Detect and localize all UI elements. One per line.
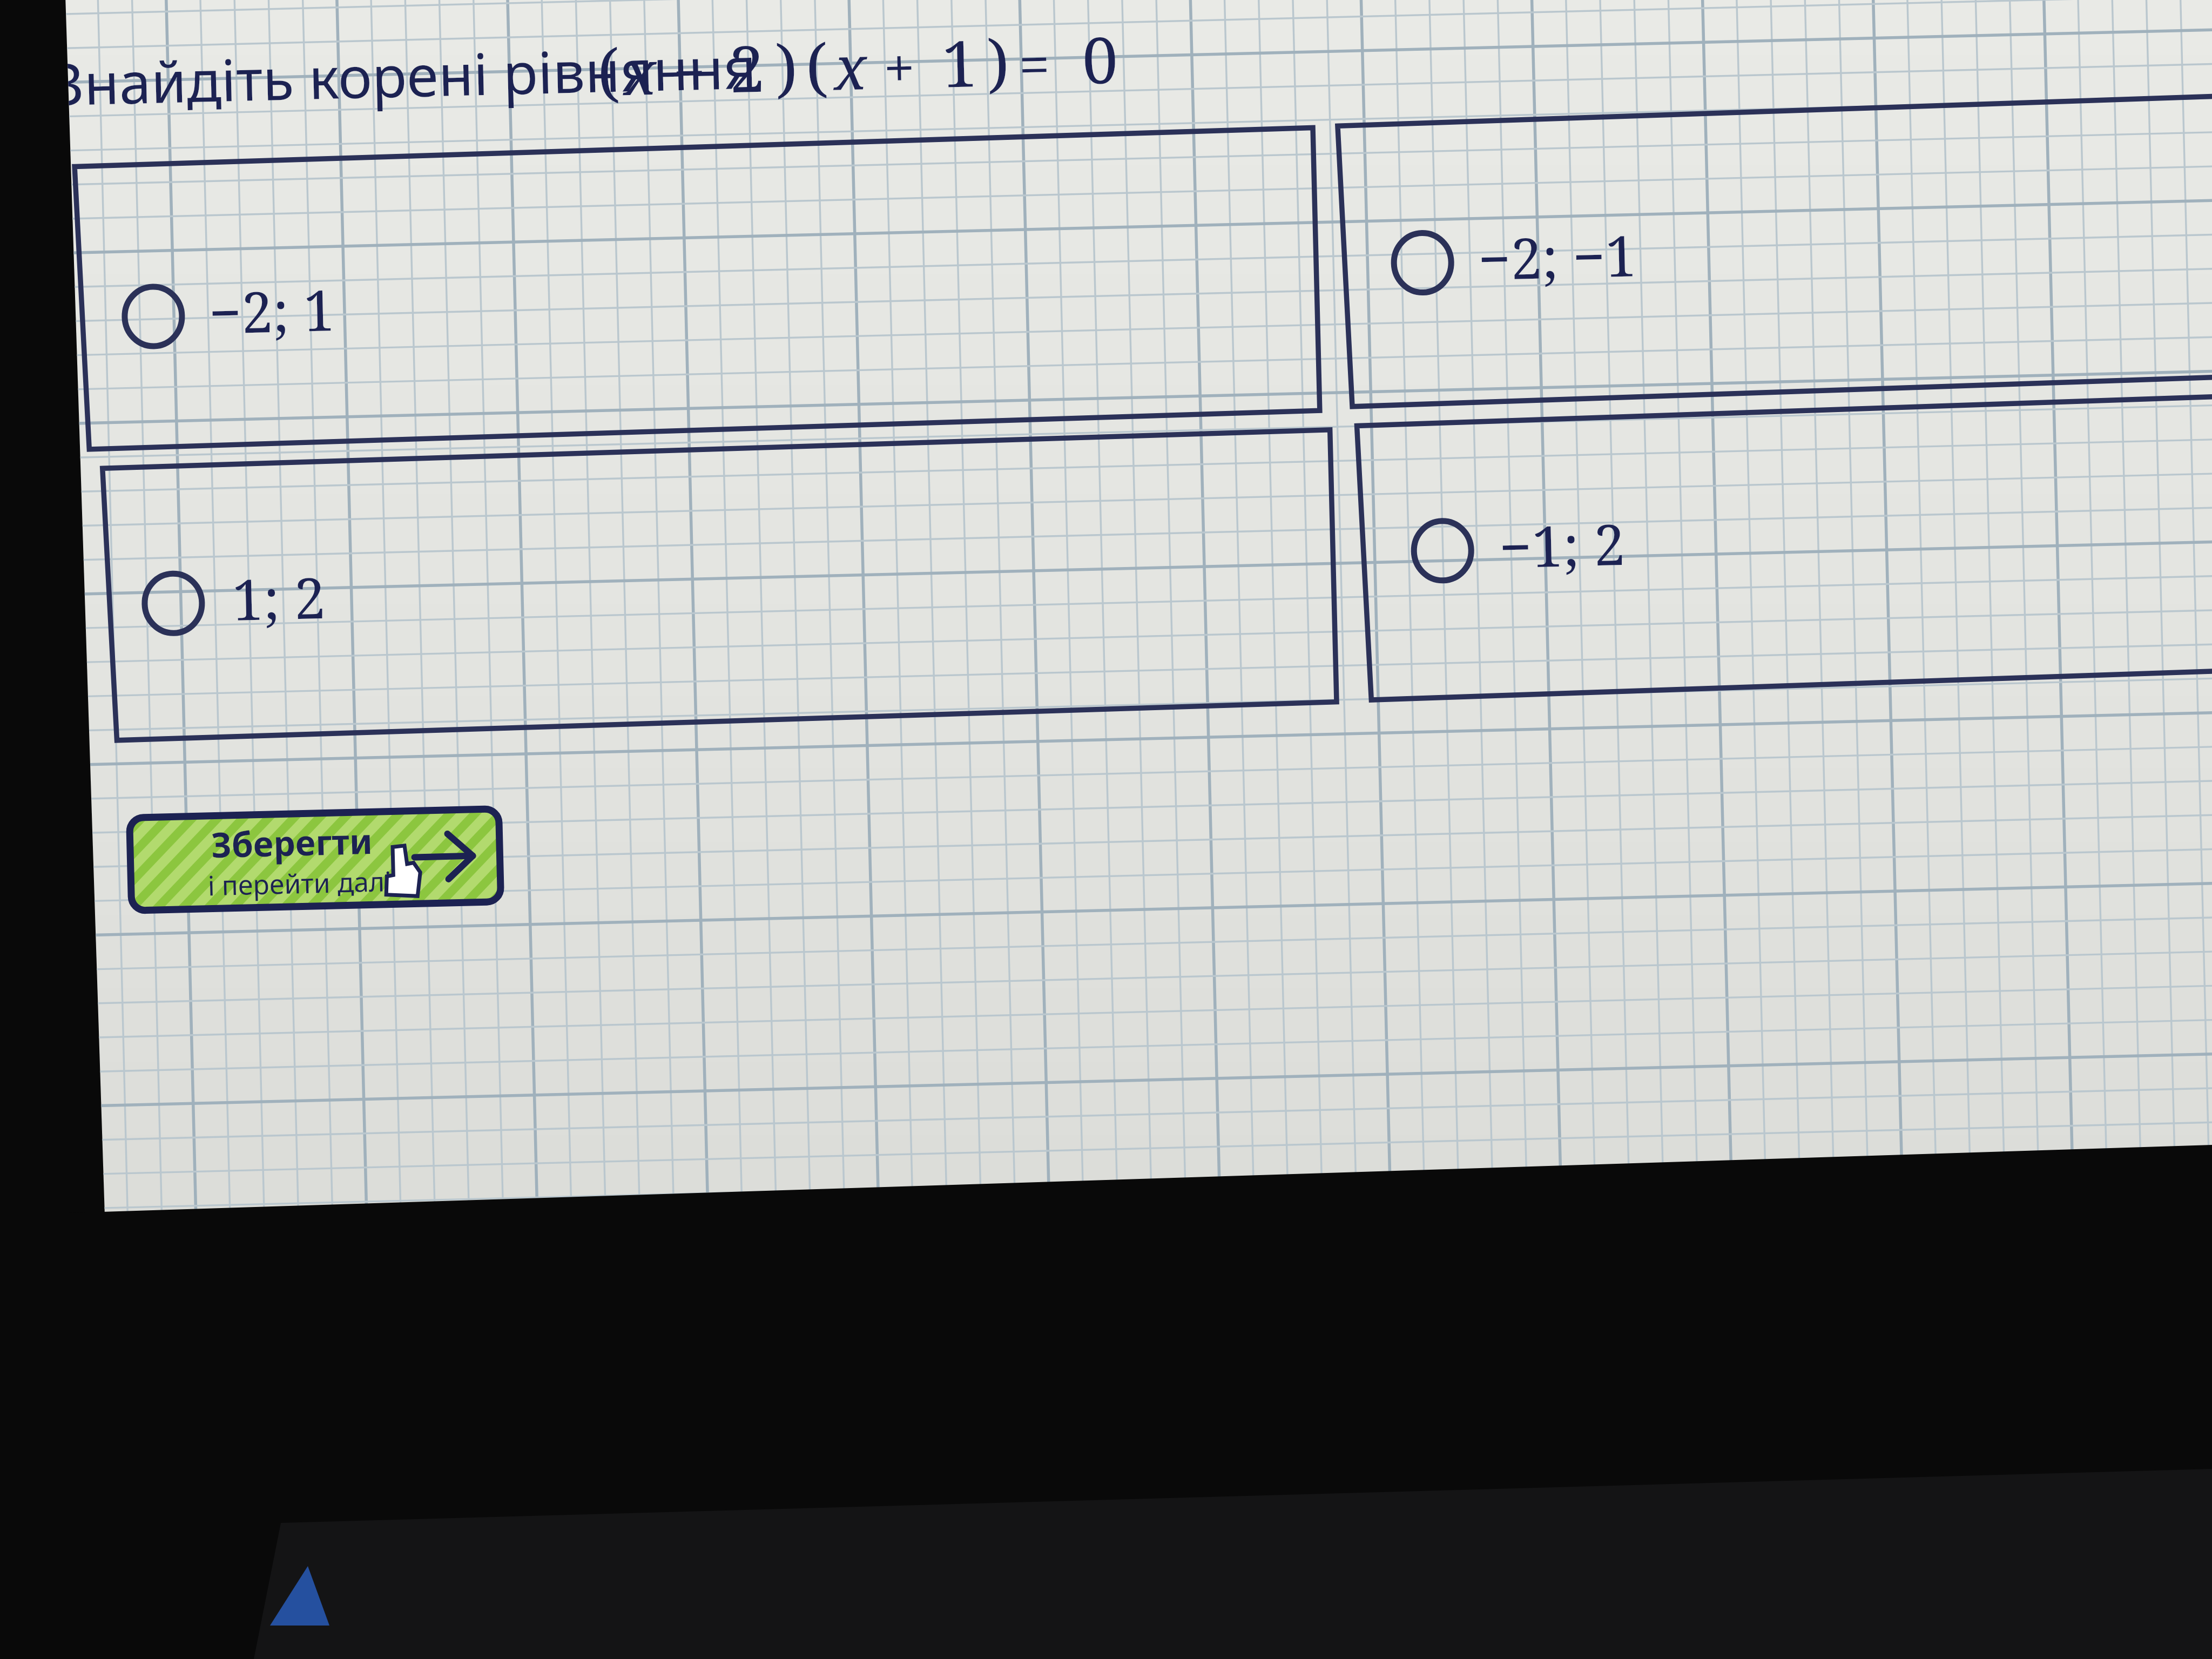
button[interactable]: Answer minus 2; 1 [84,133,1327,415]
button[interactable]: Answer minus 2; minus 1 [1350,123,2201,403]
button[interactable]: Зберегти і перейти далі [124,793,493,886]
button[interactable]: Answer 1; 2 [106,435,1334,707]
button[interactable]: Answer minus 1; 2 [1360,423,2201,697]
